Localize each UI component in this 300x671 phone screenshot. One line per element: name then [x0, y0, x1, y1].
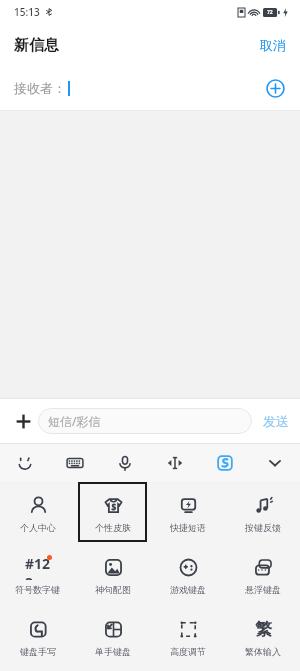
staticText: #123	[25, 554, 51, 580]
staticText: 按键反馈	[245, 522, 281, 533]
staticText: 悬浮键盘	[245, 584, 281, 595]
button[interactable]: #123	[3, 544, 72, 604]
staticText: 15:13	[14, 5, 40, 19]
button[interactable]: 单手键盘	[78, 606, 147, 666]
staticText: 短信/彩信	[48, 413, 101, 429]
staticText: 新信息	[14, 36, 59, 55]
button[interactable]: 快捷短语	[153, 482, 222, 542]
button[interactable]: 个人中心	[3, 482, 72, 542]
button[interactable]: Keyboard	[50, 444, 100, 481]
button[interactable]: 接收者：	[0, 66, 300, 110]
staticText: 繁体输入	[245, 646, 281, 657]
staticText: 72	[267, 9, 273, 16]
button[interactable]: 取消	[246, 29, 300, 61]
button[interactable]: Voice input	[100, 444, 150, 481]
button[interactable]: Text cursor	[150, 444, 200, 481]
staticText: 发送	[263, 413, 289, 429]
button[interactable]: Add recipient	[262, 75, 288, 101]
staticText: 符号数字键	[15, 584, 60, 595]
staticText: 快捷短语	[170, 522, 206, 533]
button[interactable]: 个性皮肤	[78, 482, 147, 542]
button[interactable]: 游戏键盘	[153, 544, 222, 604]
button[interactable]: Emoji	[0, 444, 50, 481]
staticText: 繁	[255, 619, 272, 640]
button[interactable]: 短信/彩信	[38, 408, 252, 434]
staticText: 键盘手写	[20, 646, 56, 657]
staticText: 神句配图	[95, 584, 131, 595]
button[interactable]: 悬浮键盘	[228, 544, 297, 604]
staticText: 个人中心	[20, 522, 56, 533]
button[interactable]: 神句配图	[78, 544, 147, 604]
button[interactable]: Sogou	[200, 444, 250, 481]
button[interactable]: Collapse	[250, 444, 300, 481]
staticText: 取消	[260, 37, 286, 53]
staticText: 单手键盘	[95, 646, 131, 657]
button[interactable]: Add attachment	[8, 406, 38, 436]
staticText: 高度调节	[170, 646, 206, 657]
button[interactable]: 按键反馈	[228, 482, 297, 542]
staticText: 接收者：	[14, 80, 66, 96]
button[interactable]: 发送	[252, 405, 300, 437]
button[interactable]: 高度调节	[153, 606, 222, 666]
button[interactable]: 键盘手写	[3, 606, 72, 666]
staticText: 游戏键盘	[170, 584, 206, 595]
button[interactable]: 繁	[228, 606, 297, 666]
staticText: 个性皮肤	[95, 522, 131, 533]
